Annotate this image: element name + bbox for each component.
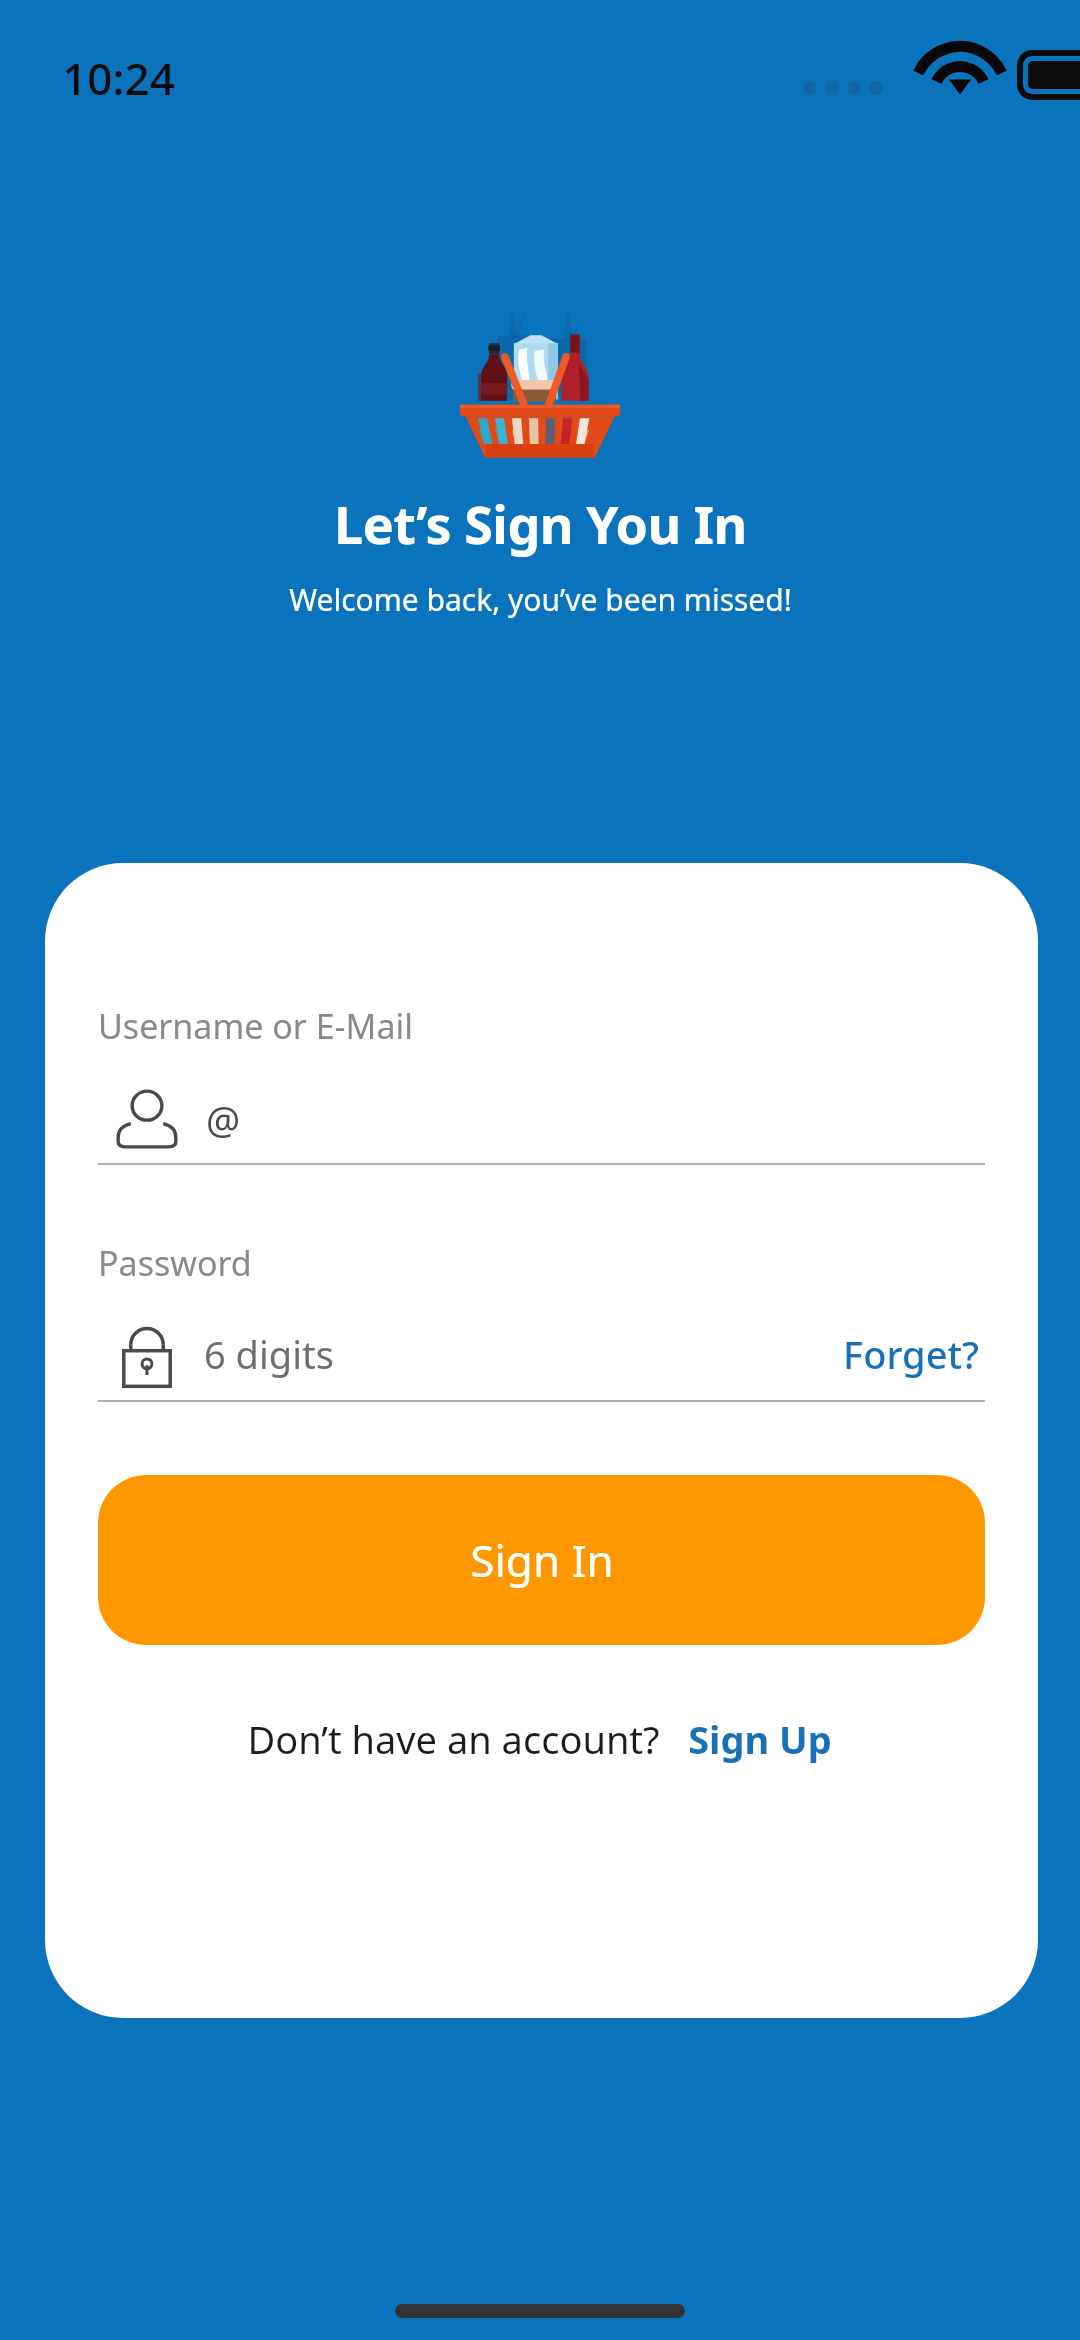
- staticText: Sign Up: [688, 1713, 832, 1765]
- staticText: Password: [98, 1240, 985, 1286]
- staticText: Welcome back, you’ve been missed!: [289, 579, 792, 620]
- staticText: Forget?: [843, 1328, 979, 1380]
- staticText: Let’s Sign You In: [334, 488, 747, 559]
- button[interactable]: @: [98, 1075, 985, 1163]
- staticText: Sign In: [470, 1530, 614, 1590]
- button[interactable]: 6 digits: [98, 1308, 837, 1400]
- button[interactable]: Forget?: [837, 1320, 985, 1388]
- button[interactable]: Sign Up: [684, 1705, 836, 1773]
- staticText: 6 digits: [204, 1328, 334, 1380]
- staticText: Don’t have an account?: [247, 1713, 660, 1765]
- staticText: 10:24: [62, 48, 175, 108]
- staticText: Username or E-Mail: [98, 1003, 985, 1049]
- staticText: @: [206, 1093, 241, 1145]
- button[interactable]: Sign In: [98, 1475, 985, 1645]
